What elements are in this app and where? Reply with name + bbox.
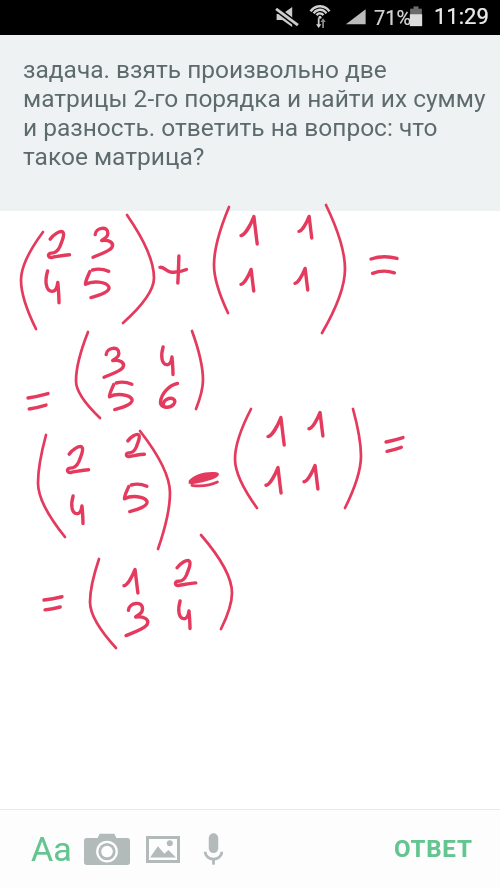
staticText: Aa <box>31 829 72 869</box>
staticText: 71% <box>374 6 412 29</box>
button[interactable]: ОТВЕТ <box>394 835 473 863</box>
staticText: 11:29 <box>434 4 489 30</box>
staticText: задача. взять произвольно две матрицы 2-… <box>23 55 490 171</box>
button[interactable]: Voice input <box>204 823 223 875</box>
button[interactable]: Take photo <box>84 823 130 875</box>
button[interactable]: Attach image <box>146 823 180 875</box>
button[interactable]: Aa <box>31 823 72 875</box>
staticText: ОТВЕТ <box>394 835 473 863</box>
